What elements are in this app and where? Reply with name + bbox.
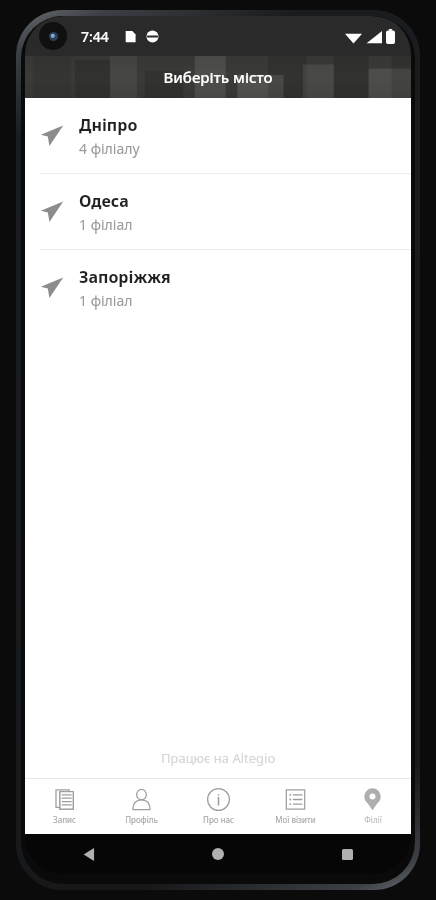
staticText: Запис xyxy=(53,814,76,825)
staticText: Одеса xyxy=(79,190,129,212)
staticText: Мої візити xyxy=(275,814,316,825)
staticText: 7:44 xyxy=(81,27,109,46)
staticText: Запоріжжя xyxy=(79,266,171,288)
staticText: 1 філіал xyxy=(79,215,133,234)
staticText: 1 філіал xyxy=(79,291,133,310)
staticText: Профіль xyxy=(125,814,158,825)
staticText: Філії xyxy=(364,814,382,825)
button[interactable]: Мої візити xyxy=(257,779,334,834)
button[interactable]: Одеса xyxy=(25,174,411,250)
button[interactable]: Запоріжжя xyxy=(25,250,411,325)
staticText: 4 філіалу xyxy=(79,139,140,158)
button[interactable]: Профіль xyxy=(103,779,180,834)
button[interactable]: Про нас xyxy=(180,779,257,834)
staticText: Дніпро xyxy=(79,114,138,136)
button[interactable]: Дніпро xyxy=(25,98,411,174)
button[interactable]: Запис xyxy=(25,779,103,834)
button[interactable]: Home xyxy=(200,836,236,872)
button[interactable]: Back xyxy=(71,836,107,872)
staticText: Про нас xyxy=(203,814,234,825)
staticText: Виберіть місто xyxy=(163,67,273,87)
button[interactable]: Філії xyxy=(334,779,411,834)
staticText: Працює на Altegio xyxy=(161,749,276,767)
button[interactable]: Recent apps xyxy=(329,836,365,872)
